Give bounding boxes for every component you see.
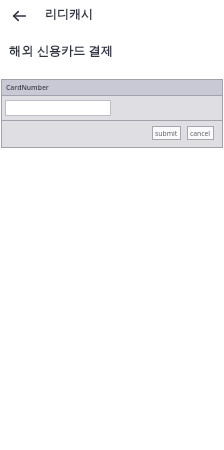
staticText: cancel	[190, 129, 211, 138]
staticText: CardNumber	[6, 83, 49, 92]
button[interactable]: Back	[7, 4, 31, 28]
button[interactable]: submit	[152, 126, 181, 140]
staticText: 리디캐시	[45, 6, 93, 21]
button[interactable]	[5, 100, 111, 116]
staticText: submit	[155, 129, 178, 138]
button[interactable]: cancel	[187, 126, 214, 140]
staticText: 해외 신용카드 결제	[9, 42, 113, 59]
